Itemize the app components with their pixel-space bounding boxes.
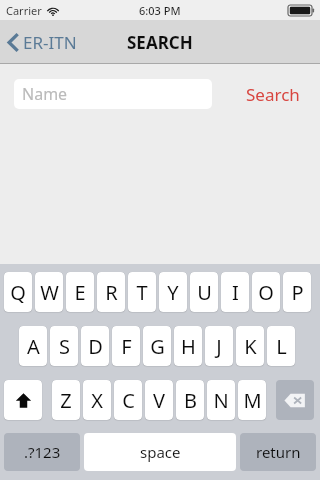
staticText: Z (60, 387, 72, 414)
button[interactable]: G (143, 326, 171, 366)
staticText: P (291, 279, 304, 306)
staticText: O (258, 279, 274, 306)
staticText: SEARCH (127, 31, 193, 54)
staticText: space (140, 442, 181, 462)
staticText: E (74, 279, 86, 306)
button[interactable]: Y (159, 272, 187, 312)
staticText: T (136, 279, 148, 306)
staticText: K (244, 333, 257, 360)
staticText: Q (10, 279, 26, 306)
button[interactable]: D (81, 326, 109, 366)
staticText: A (27, 333, 40, 360)
staticText: M (243, 387, 262, 414)
button[interactable]: Search (240, 77, 306, 112)
button[interactable]: A (19, 326, 47, 366)
button[interactable]: C (114, 380, 142, 420)
staticText: .?123 (24, 442, 61, 462)
staticText: return (256, 442, 301, 462)
button[interactable]: Backspace (276, 380, 314, 420)
staticText: W (40, 279, 59, 306)
staticText: I (232, 279, 239, 306)
staticText: X (91, 387, 103, 414)
staticText: J (216, 333, 222, 360)
button[interactable]: K (236, 326, 264, 366)
staticText: V (153, 387, 165, 414)
staticText: D (88, 333, 103, 360)
staticText: Y (167, 279, 179, 306)
staticText: R (105, 279, 118, 306)
staticText: Search (246, 83, 300, 106)
button[interactable]: Name (14, 79, 212, 109)
button[interactable]: space (84, 433, 236, 471)
button[interactable]: U (190, 272, 218, 312)
button[interactable]: W (35, 272, 63, 312)
staticText: Name (22, 83, 68, 105)
staticText: U (197, 279, 212, 306)
button[interactable]: S (50, 326, 78, 366)
button[interactable]: Z (52, 380, 80, 420)
staticText: Carrier (6, 3, 42, 18)
button[interactable]: I (221, 272, 249, 312)
button[interactable]: ER-ITN (0, 25, 87, 60)
button[interactable]: V (145, 380, 173, 420)
staticText: F (121, 333, 132, 360)
button[interactable]: J (205, 326, 233, 366)
button[interactable]: M (238, 380, 266, 420)
button[interactable]: X (83, 380, 111, 420)
staticText: B (184, 387, 197, 414)
button[interactable]: L (267, 326, 295, 366)
button[interactable]: N (207, 380, 235, 420)
staticText: L (276, 333, 287, 360)
staticText: N (213, 387, 229, 414)
button[interactable]: Shift (4, 380, 42, 420)
button[interactable]: .?123 (4, 433, 80, 471)
staticText: C (122, 387, 135, 414)
staticText: ER-ITN (23, 31, 77, 54)
button[interactable]: Q (4, 272, 32, 312)
button[interactable]: T (128, 272, 156, 312)
staticText: 6:03 PM (139, 3, 181, 18)
button[interactable]: P (283, 272, 311, 312)
button[interactable]: F (112, 326, 140, 366)
button[interactable]: return (240, 433, 316, 471)
button[interactable]: R (97, 272, 125, 312)
button[interactable]: B (176, 380, 204, 420)
button[interactable]: O (252, 272, 280, 312)
staticText: S (59, 333, 70, 360)
staticText: H (181, 333, 196, 360)
button[interactable]: E (66, 272, 94, 312)
button[interactable]: H (174, 326, 202, 366)
staticText: G (150, 333, 165, 360)
